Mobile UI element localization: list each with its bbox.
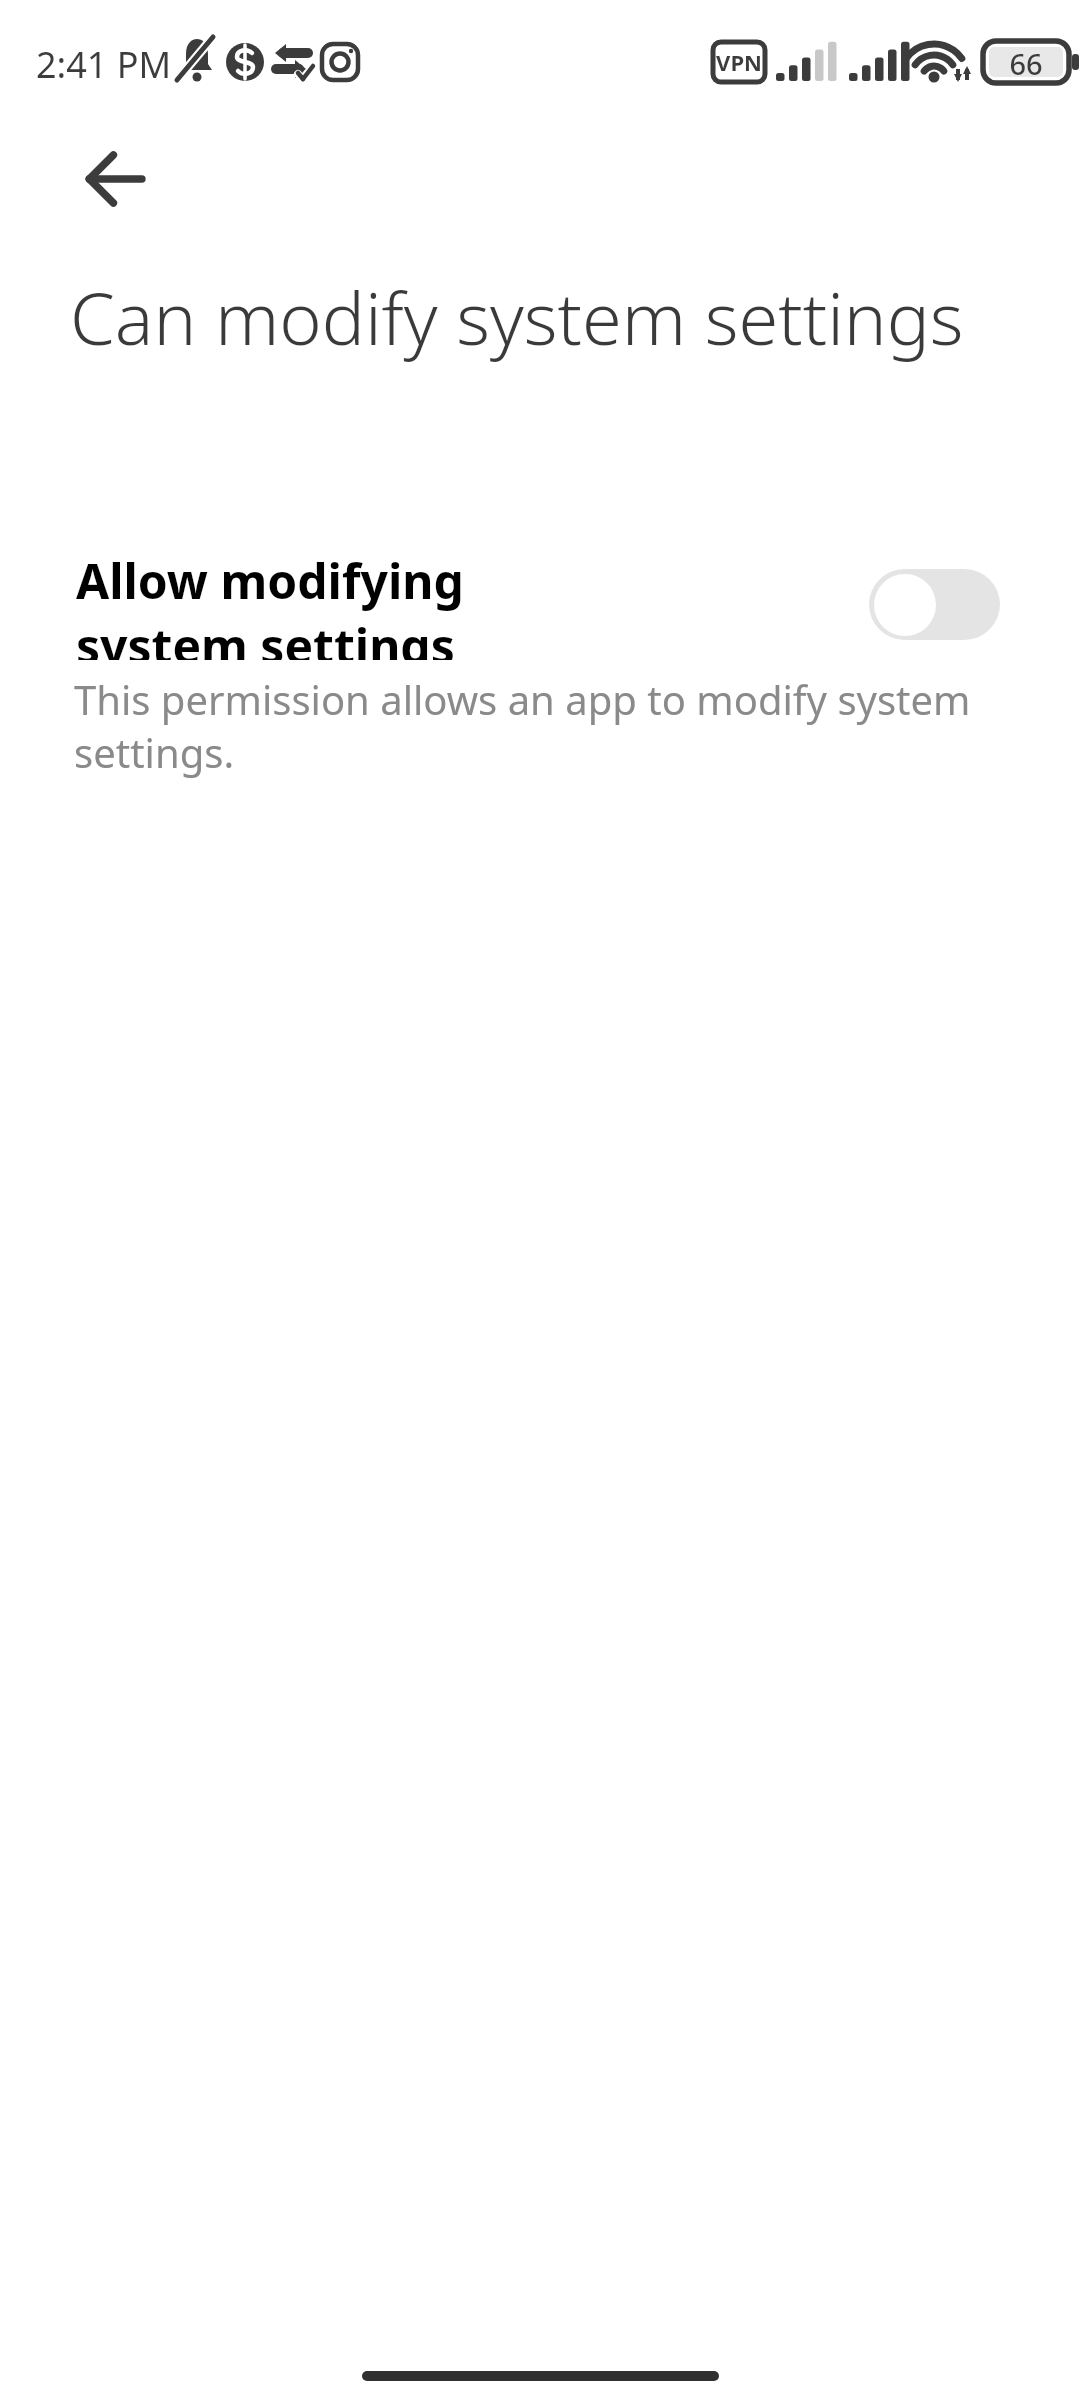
- staticText: VPN: [716, 47, 762, 77]
- button[interactable]: Allow modifying system settings: [0, 548, 1080, 660]
- staticText: 2:41 PM: [36, 40, 172, 86]
- staticText: Allow modifying system settings: [76, 548, 472, 660]
- staticText: This permission allows an app to modify …: [74, 672, 1014, 780]
- staticText: Can modify system settings: [70, 268, 964, 366]
- button[interactable]: Back: [60, 124, 170, 234]
- staticText: 66: [1009, 44, 1043, 83]
- other: Allow modifying system settings toggle: [869, 569, 1000, 640]
